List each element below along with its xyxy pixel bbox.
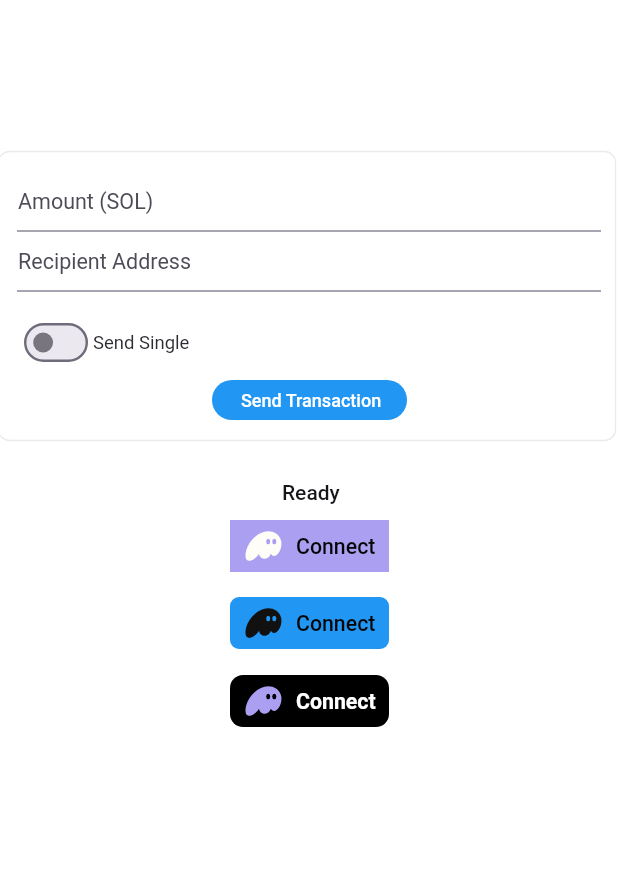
- staticText: Connect: [296, 611, 376, 636]
- staticText: Amount (SOL): [18, 189, 154, 214]
- staticText: Connect: [296, 689, 376, 714]
- staticText: Send Transaction: [241, 390, 382, 411]
- button[interactable]: Connect: [230, 597, 389, 649]
- button[interactable]: Connect: [230, 520, 389, 572]
- button[interactable]: Recipient Address: [17, 243, 601, 292]
- staticText: Recipient Address: [18, 249, 192, 274]
- staticText: Ready: [282, 481, 340, 506]
- button[interactable]: Connect: [230, 675, 389, 727]
- staticText: Connect: [296, 534, 376, 559]
- button[interactable]: Amount (SOL): [17, 183, 601, 232]
- button[interactable]: Send Single toggle, off: [24, 323, 190, 362]
- other: Send Single toggle, off: [24, 323, 88, 362]
- button[interactable]: Send Transaction: [212, 380, 407, 420]
- staticText: Send Single: [93, 332, 190, 354]
